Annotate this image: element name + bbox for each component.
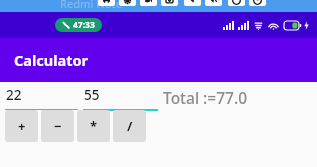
- staticText: /: [127, 117, 133, 135]
- button[interactable]: /: [113, 110, 146, 142]
- button[interactable]: Volume down: [184, 0, 201, 6]
- button[interactable]: Power: [249, 0, 266, 6]
- staticText: 22: [6, 86, 22, 104]
- button[interactable]: Rotate: [98, 0, 115, 6]
- button[interactable]: −: [41, 110, 74, 142]
- button[interactable]: Volume up: [205, 0, 222, 6]
- staticText: 55: [84, 86, 100, 104]
- button[interactable]: *: [77, 110, 110, 142]
- staticText: +: [18, 117, 26, 135]
- button[interactable]: Settings: [119, 0, 136, 6]
- staticText: *: [90, 117, 98, 135]
- button[interactable]: 55: [83, 86, 158, 111]
- button[interactable]: Record video: [140, 0, 157, 6]
- button[interactable]: Screenshot: [161, 0, 178, 6]
- button[interactable]: 47:33: [55, 18, 102, 32]
- button[interactable]: 22: [5, 86, 78, 110]
- button[interactable]: +: [5, 110, 38, 142]
- staticText: Redmi Note: [60, 0, 123, 8]
- staticText: Total :=77.0: [163, 87, 248, 108]
- button[interactable]: Back: [228, 0, 245, 6]
- staticText: 47:33: [73, 19, 95, 31]
- staticText: Calculator: [14, 50, 89, 70]
- staticText: −: [54, 117, 62, 135]
